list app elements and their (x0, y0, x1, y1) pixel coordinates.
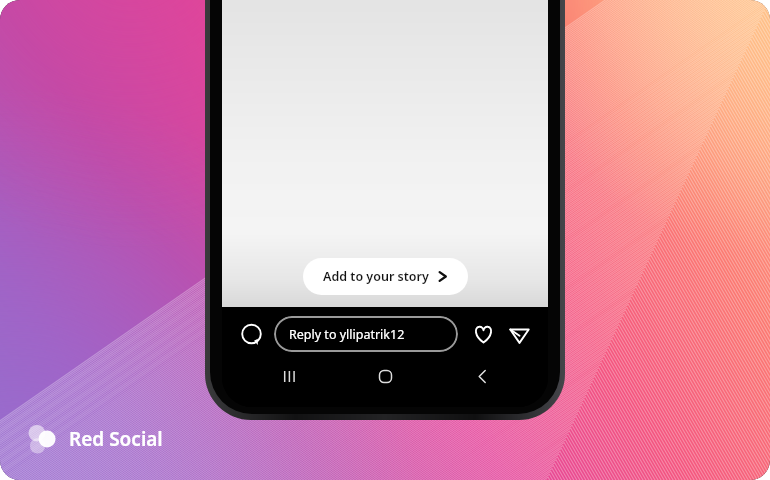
button[interactable]: Send message (504, 319, 534, 349)
button[interactable]: Reply to yllipatrik12 (274, 316, 458, 352)
staticText: Reply to yllipatrik12 (289, 326, 405, 343)
button[interactable]: Like (468, 319, 498, 349)
staticText: Add to your story (323, 268, 429, 285)
button[interactable]: Back (452, 361, 512, 391)
button[interactable]: Comments (236, 319, 266, 349)
button[interactable]: Red Social (26, 422, 163, 456)
button[interactable]: Home (355, 361, 415, 391)
button[interactable]: Recent apps (259, 361, 319, 391)
button[interactable]: Add to your story (303, 258, 468, 295)
staticText: Red Social (69, 426, 163, 452)
